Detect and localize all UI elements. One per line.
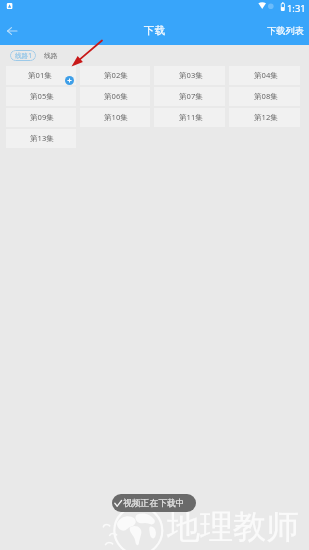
button[interactable]: 第13集 (6, 129, 76, 148)
button[interactable]: 第12集 (229, 108, 300, 127)
button[interactable]: 线路1 (10, 50, 36, 61)
staticText: 第06集 (104, 91, 128, 101)
staticText: 第12集 (254, 112, 278, 122)
button[interactable]: 第02集 (80, 66, 150, 85)
staticText: 下载列表 (267, 25, 304, 37)
button[interactable]: 第07集 (154, 87, 225, 106)
staticText: 第08集 (254, 91, 278, 101)
button[interactable]: 第11集 (154, 108, 225, 127)
staticText: 第07集 (179, 91, 203, 101)
staticText: 视频正在下载中 (123, 498, 185, 509)
staticText: 下载 (144, 24, 165, 37)
button[interactable]: 第01集 (6, 66, 76, 85)
staticText: 第01集 (28, 70, 52, 80)
button[interactable]: 第08集 (229, 87, 300, 106)
button[interactable]: 第09集 (6, 108, 76, 127)
staticText: 第09集 (30, 112, 54, 122)
button[interactable]: 返回 (0, 16, 24, 45)
staticText: 线路1 (15, 51, 32, 60)
other: 下载 (65, 76, 74, 85)
staticText: 1:31 (287, 2, 306, 15)
button[interactable]: 第04集 (229, 66, 300, 85)
staticText: 地理教师 (167, 506, 299, 548)
staticText: 第11集 (179, 112, 203, 122)
staticText: 第13集 (30, 133, 54, 143)
button[interactable]: 第03集 (154, 66, 225, 85)
staticText: 第04集 (254, 70, 278, 80)
staticText: 第05集 (30, 91, 54, 101)
staticText: 第02集 (104, 70, 128, 80)
staticText: 线路 (44, 51, 58, 60)
button[interactable]: 第05集 (6, 87, 76, 106)
button[interactable]: 第10集 (80, 108, 150, 127)
staticText: 第10集 (104, 112, 128, 122)
button[interactable]: 第06集 (80, 87, 150, 106)
button[interactable]: 下载列表 (261, 16, 309, 45)
staticText: 第03集 (179, 70, 203, 80)
